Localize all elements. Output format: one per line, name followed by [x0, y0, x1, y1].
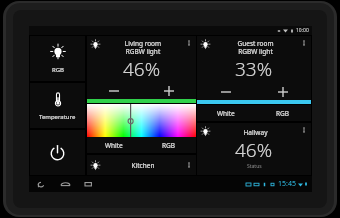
staticText: White [105, 141, 123, 150]
button[interactable]: Kitchen [87, 155, 196, 175]
staticText: RGB [52, 66, 65, 74]
button[interactable]: Hallway [197, 123, 311, 175]
staticText: Guest room RGBW light [211, 39, 300, 56]
staticText: 33% [235, 56, 273, 82]
button[interactable]: Back [34, 177, 48, 191]
button[interactable]: RGB [30, 36, 85, 81]
button[interactable]: Colour picker [87, 104, 196, 137]
button[interactable]: RGB [141, 137, 196, 153]
staticText: 46% [123, 56, 161, 82]
staticText: Living room RGBW light [101, 39, 185, 56]
staticText: White [217, 109, 235, 118]
staticText: Kitchen [101, 161, 185, 170]
button[interactable]: Living room RGBW light [87, 36, 196, 99]
staticText: 10:00 [296, 27, 309, 34]
staticText: Hallway [211, 128, 300, 137]
button[interactable]: Recents [82, 177, 96, 191]
staticText: 15:45 [278, 179, 296, 189]
button[interactable]: White [87, 137, 141, 153]
button[interactable]: Power [30, 130, 85, 175]
button[interactable]: Decrease [87, 82, 141, 99]
staticText: 46% [235, 137, 273, 163]
staticText: Status [247, 163, 262, 170]
staticText: RGB [276, 109, 290, 118]
button[interactable]: RGB [254, 105, 311, 121]
button[interactable]: Home [58, 177, 72, 191]
staticText: RGB [162, 141, 176, 150]
button[interactable]: Guest room RGBW light [197, 36, 311, 100]
button[interactable]: Increase [141, 82, 196, 99]
button[interactable]: Increase [254, 83, 311, 100]
button[interactable]: White [197, 105, 254, 121]
button[interactable]: Temperature [30, 83, 85, 128]
staticText: Temperature [39, 113, 76, 121]
button[interactable]: Decrease [197, 83, 254, 100]
